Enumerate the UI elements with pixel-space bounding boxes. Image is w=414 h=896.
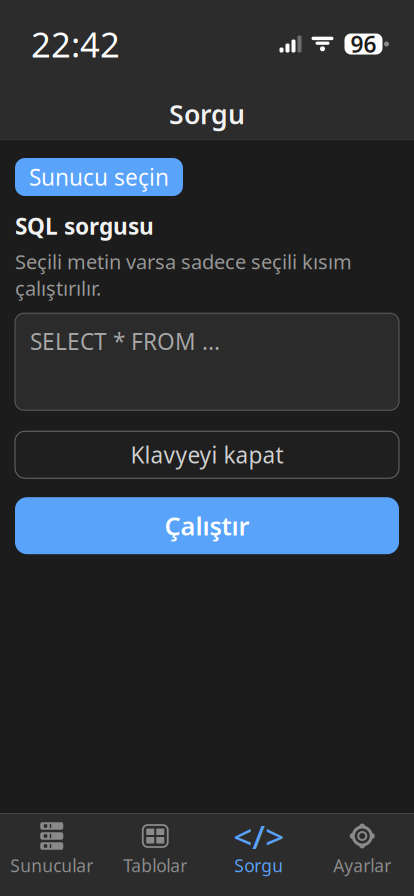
staticText: Klavyeyi kapat <box>130 440 283 470</box>
staticText: Seçili metin varsa sadece seçili kısım ç… <box>15 248 352 301</box>
staticText: Tablolar <box>123 854 187 877</box>
button[interactable]: Çalıştır <box>15 497 399 554</box>
staticText: Ayarlar <box>333 854 391 877</box>
staticText: 22:42 <box>31 21 120 67</box>
button[interactable]: Ayarlar <box>310 823 414 889</box>
staticText: SQL sorgusu <box>15 211 154 241</box>
staticText: 96 <box>350 29 376 59</box>
staticText: Sorgu <box>169 96 245 132</box>
staticText: Sunucu seçin <box>29 162 169 192</box>
staticText: Sorgu <box>234 854 283 877</box>
staticText: Sunucular <box>10 854 93 877</box>
button[interactable]: Klavyeyi kapat <box>15 431 399 478</box>
button[interactable]: Sunucu seçin <box>15 158 183 196</box>
button[interactable]: Sunucular <box>0 823 103 889</box>
button[interactable]: Tablolar <box>103 823 207 889</box>
staticText: SELECT * FROM ... <box>30 326 220 356</box>
staticText: </> <box>233 814 284 858</box>
staticText: Çalıştır <box>164 509 249 542</box>
button[interactable]: </> <box>207 823 310 889</box>
